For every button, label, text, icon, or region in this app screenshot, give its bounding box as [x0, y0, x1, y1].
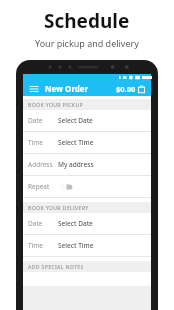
- button[interactable]: Date: [23, 110, 151, 132]
- staticText: Select Date: [58, 116, 93, 125]
- staticText: New Order: [45, 83, 89, 94]
- staticText: Repeat: [28, 182, 58, 191]
- staticText: BOOK YOUR PICKUP: [28, 101, 83, 108]
- button[interactable]: Time: [23, 235, 151, 257]
- staticText: Time: [28, 138, 58, 147]
- staticText: BOOK YOUR DELIVERY: [28, 204, 89, 211]
- button[interactable]: Repeat toggle: [58, 182, 74, 192]
- staticText: Date: [28, 219, 58, 228]
- button[interactable]: Time: [23, 132, 151, 154]
- staticText: Schedule: [44, 8, 130, 34]
- button[interactable]: Address: [23, 154, 151, 176]
- staticText: Address: [28, 160, 58, 169]
- staticText: Select Time: [58, 241, 94, 250]
- button[interactable]: Open navigation menu: [28, 83, 39, 94]
- staticText: Date: [28, 116, 58, 125]
- button[interactable]: $0.00: [115, 84, 146, 94]
- button[interactable]: Repeat: [23, 176, 151, 198]
- staticText: $0.00: [116, 84, 136, 94]
- staticText: ADD SPECIAL NOTES: [28, 263, 84, 270]
- staticText: Your pickup and delivery: [35, 37, 139, 49]
- button[interactable]: Date: [23, 213, 151, 235]
- staticText: Time: [28, 241, 58, 250]
- staticText: Select Time: [58, 138, 94, 147]
- staticText: My address: [58, 160, 94, 169]
- staticText: Select Date: [58, 219, 93, 228]
